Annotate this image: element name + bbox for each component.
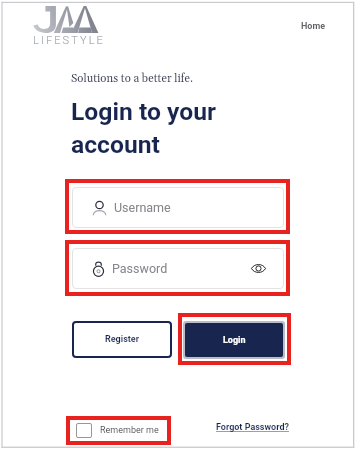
button[interactable]: Forgot Password?	[213, 420, 292, 435]
staticText: Register	[105, 334, 139, 345]
button[interactable]: Remember me	[70, 420, 167, 441]
staticText: Login to your account	[71, 97, 231, 159]
staticText: Remember me	[100, 425, 159, 436]
staticText: Username	[114, 200, 171, 215]
staticText: Login	[223, 335, 246, 346]
staticText: Solutions to a better life.	[71, 72, 193, 86]
button[interactable]: Password	[72, 248, 284, 289]
staticText: Home	[301, 21, 326, 32]
button[interactable]: Home	[296, 18, 331, 35]
staticText: Password	[112, 261, 168, 276]
button[interactable]: Register	[72, 321, 172, 358]
staticText: LIFESTYLE	[33, 34, 105, 47]
button[interactable]: Username	[72, 187, 284, 228]
button[interactable]: Show password	[251, 263, 266, 274]
button[interactable]: Login	[185, 323, 283, 357]
staticText: Forgot Password?	[216, 422, 289, 433]
